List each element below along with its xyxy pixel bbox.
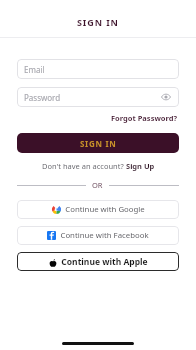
button[interactable]: Forgot Password? xyxy=(110,112,179,124)
staticText: SIGN IN xyxy=(77,16,119,28)
staticText: Continue with Apple xyxy=(61,256,148,268)
staticText: SIGN IN xyxy=(80,138,117,149)
staticText: Email xyxy=(24,64,45,75)
staticText: Continue with Facebook xyxy=(60,230,149,241)
button[interactable]: Password xyxy=(17,87,179,107)
button[interactable]: Show password xyxy=(160,91,172,103)
staticText: Sign Up xyxy=(126,161,155,171)
button[interactable]: Email xyxy=(17,59,179,79)
staticText: Don't have an account? xyxy=(42,161,126,171)
button[interactable]: Continue with Google xyxy=(17,200,179,219)
button[interactable]: Sign Up xyxy=(126,161,155,171)
staticText: Password xyxy=(24,92,61,103)
staticText: Forgot Password? xyxy=(111,113,178,123)
button[interactable]: SIGN IN xyxy=(17,133,179,153)
button[interactable]: Continue with Facebook xyxy=(17,226,179,245)
button[interactable]: Continue with Apple xyxy=(17,252,179,271)
staticText: OR xyxy=(92,180,103,190)
staticText: Continue with Google xyxy=(65,204,145,215)
